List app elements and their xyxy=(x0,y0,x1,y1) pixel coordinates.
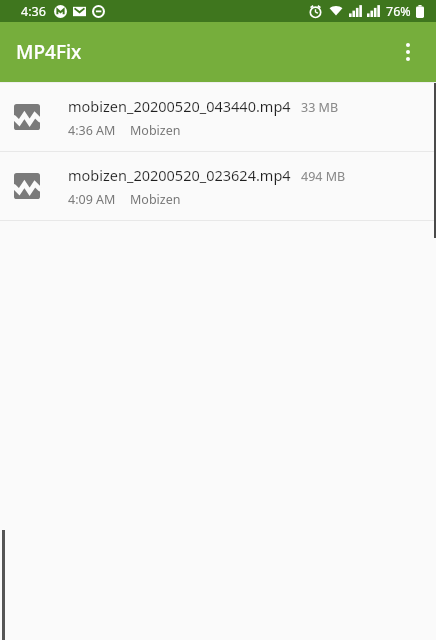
staticText: Mobizen xyxy=(130,191,181,208)
staticText: 33 MB xyxy=(301,99,339,116)
staticText: MP4Fix xyxy=(16,39,82,65)
staticText: 76% xyxy=(386,3,411,20)
button[interactable]: mobizen_20200520_043440.mp4 xyxy=(0,83,436,152)
staticText: mobizen_20200520_043440.mp4 xyxy=(68,96,291,116)
staticText: 4:09 AM xyxy=(68,191,116,208)
staticText: 4:36 xyxy=(21,3,46,20)
staticText: 4:36 AM xyxy=(68,122,116,139)
button[interactable]: More options xyxy=(386,30,430,74)
staticText: mobizen_20200520_023624.mp4 xyxy=(68,165,291,185)
staticText: 494 MB xyxy=(301,168,346,185)
staticText: Mobizen xyxy=(130,122,181,139)
button[interactable]: mobizen_20200520_023624.mp4 xyxy=(0,152,436,221)
